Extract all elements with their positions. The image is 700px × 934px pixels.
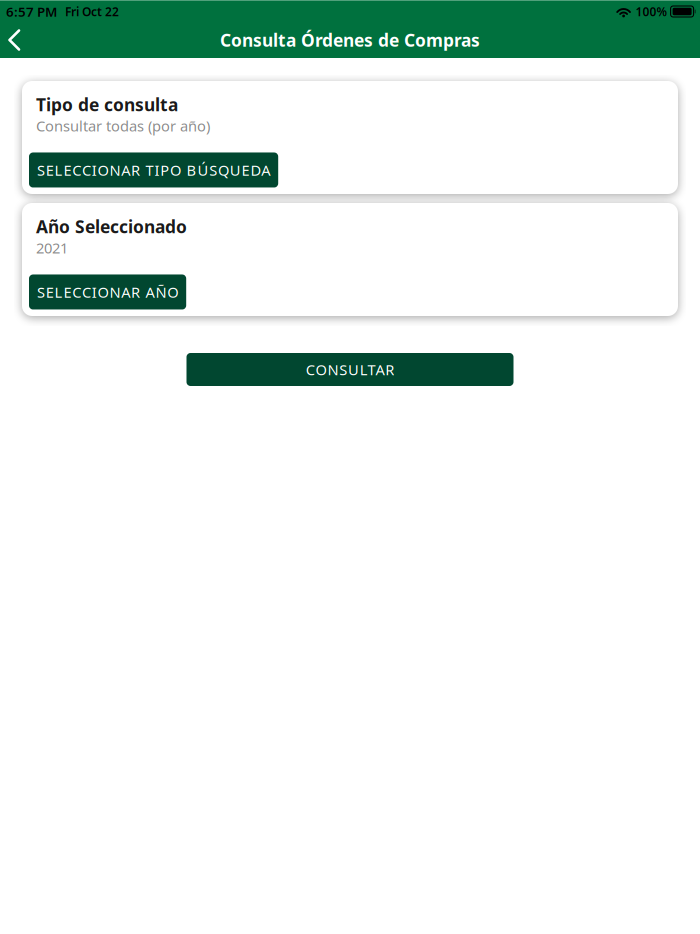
button[interactable]: SELECCIONAR AÑO [29, 274, 186, 309]
button[interactable]: SELECCIONAR TIPO BÚSQUEDA [29, 152, 278, 187]
button[interactable]: Back [0, 22, 33, 58]
button[interactable]: CONSULTAR [186, 353, 513, 386]
staticText: Año Seleccionado [36, 215, 187, 238]
staticText: CONSULTAR [306, 360, 394, 379]
staticText: Consulta Órdenes de Compras [220, 28, 480, 51]
staticText: 6:57 PM [6, 3, 57, 20]
staticText: Tipo de consulta [36, 93, 178, 116]
staticText: SELECCIONAR TIPO BÚSQUEDA [37, 160, 270, 180]
staticText: 2021 [36, 238, 68, 257]
staticText: Fri Oct 22 [65, 3, 119, 19]
staticText: 100% [636, 3, 668, 19]
staticText: SELECCIONAR AÑO [37, 282, 178, 302]
staticText: Consultar todas (por año) [36, 116, 210, 135]
